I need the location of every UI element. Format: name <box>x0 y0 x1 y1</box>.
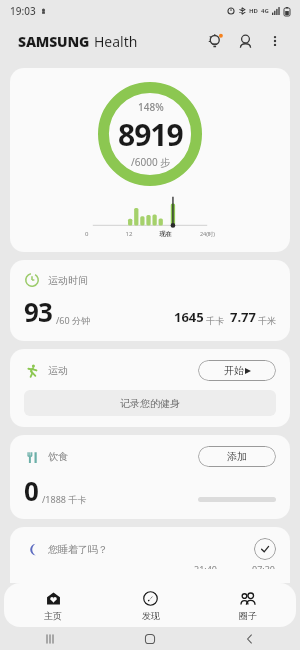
staticText: 21:40 <box>194 563 218 569</box>
button[interactable]: Profile <box>230 26 260 56</box>
staticText: 148% <box>138 100 164 114</box>
staticText: 千卡 <box>206 315 224 326</box>
button[interactable]: 运动时间 <box>10 260 290 341</box>
staticText: 开始 <box>224 364 244 377</box>
staticText: 发现 <box>142 610 160 621</box>
button[interactable]: Home <box>100 627 200 650</box>
staticText: 添加 <box>227 450 247 463</box>
staticText: HD <box>249 7 258 15</box>
button[interactable]: 148% <box>10 68 290 252</box>
staticText: 7.77 <box>230 308 256 326</box>
staticText: 1645 <box>174 308 204 326</box>
staticText: /60 分钟 <box>56 314 90 326</box>
staticText: 93 <box>24 294 53 329</box>
button[interactable]: Back <box>200 627 300 650</box>
staticText: Health <box>94 32 138 51</box>
button[interactable]: Tips <box>200 26 230 56</box>
button[interactable]: 圈子 <box>199 583 296 627</box>
button[interactable]: 记录您的健身 <box>24 390 276 416</box>
staticText: 8919 <box>118 114 183 155</box>
button[interactable]: 饮食 <box>10 435 290 519</box>
staticText: 07:30 <box>252 563 276 569</box>
staticText: 运动 <box>48 364 68 377</box>
staticText: 0 <box>24 473 39 508</box>
staticText: 记录您的健身 <box>120 397 180 410</box>
staticText: 现在 <box>149 230 182 238</box>
button[interactable]: Confirm <box>254 538 276 560</box>
staticText: 4G <box>261 7 269 15</box>
button[interactable]: 开始 <box>198 360 276 381</box>
staticText: SAMSUNG <box>18 32 90 51</box>
staticText: 12 <box>109 230 149 238</box>
button[interactable]: 您睡着了吗？ <box>10 527 290 583</box>
button[interactable]: 发现 <box>102 583 199 627</box>
staticText: 圈子 <box>239 610 257 621</box>
staticText: 19:03 <box>10 4 36 18</box>
button[interactable]: 添加 <box>198 446 276 467</box>
staticText: /6000 步 <box>131 155 171 169</box>
button[interactable]: Recents <box>0 627 100 650</box>
staticText: 24(时) <box>182 230 215 238</box>
staticText: 饮食 <box>48 450 68 463</box>
button[interactable]: 主页 <box>4 583 102 627</box>
staticText: /1888 千卡 <box>42 493 87 505</box>
button[interactable]: 运动 <box>10 349 290 427</box>
staticText: 千米 <box>258 315 276 326</box>
staticText: 主页 <box>44 610 62 621</box>
staticText: 运动时间 <box>48 274 88 287</box>
staticText: 0 <box>85 230 109 238</box>
staticText: 您睡着了吗？ <box>48 543 108 556</box>
button[interactable]: More options <box>260 26 290 56</box>
